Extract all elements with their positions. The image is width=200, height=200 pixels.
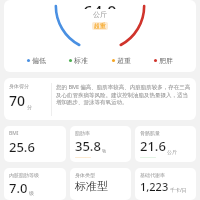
button[interactable]: BMI bbox=[4, 126, 66, 162]
button[interactable]: 超重 bbox=[111, 56, 132, 65]
staticText: 公斤 bbox=[93, 10, 107, 19]
button[interactable]: 64.0 bbox=[4, 0, 196, 72]
button[interactable]: 身体类型 bbox=[70, 168, 131, 200]
staticText: % bbox=[102, 148, 107, 155]
button[interactable]: 肥胖 bbox=[153, 56, 174, 65]
staticText: 标准型 bbox=[75, 179, 108, 193]
staticText: 您的 BMI 偏高、脂肪率较高、内脏脂肪较多，存在三高及心血管疾病等风险。建议控… bbox=[56, 83, 192, 105]
button[interactable]: 脂肪率 bbox=[70, 126, 131, 162]
staticText: 7.0 bbox=[9, 179, 28, 196]
staticText: 64.0 bbox=[83, 0, 117, 9]
button[interactable]: 标准 bbox=[68, 56, 89, 65]
staticText: 70 bbox=[9, 91, 26, 110]
staticText: 公斤 bbox=[167, 149, 177, 155]
staticText: 1,223 bbox=[140, 179, 169, 194]
staticText: 偏低 bbox=[32, 56, 46, 65]
staticText: 25.6 bbox=[9, 138, 35, 156]
staticText: 级 bbox=[29, 190, 34, 196]
staticText: 千卡/日 bbox=[170, 187, 187, 194]
button[interactable]: 偏低 bbox=[26, 56, 47, 65]
staticText: 内脏脂肪等级 bbox=[9, 172, 39, 178]
button[interactable]: 基础代谢率 bbox=[135, 168, 196, 200]
button[interactable]: 内脏脂肪等级 bbox=[4, 168, 66, 200]
staticText: 35.8 bbox=[75, 137, 101, 155]
staticText: 肥胖 bbox=[159, 56, 173, 65]
staticText: 骨骼肌量 bbox=[140, 130, 160, 136]
staticText: 标准 bbox=[74, 56, 88, 65]
staticText: 分 bbox=[27, 104, 32, 110]
staticText: 基础代谢率 bbox=[140, 172, 165, 178]
staticText: 脂肪率 bbox=[75, 130, 90, 136]
staticText: 超重 bbox=[94, 22, 106, 30]
staticText: BMI bbox=[9, 130, 19, 137]
staticText: 身体得分 bbox=[9, 83, 29, 89]
staticText: 21.6 bbox=[140, 137, 166, 155]
staticText: 超重 bbox=[117, 56, 131, 65]
staticText: 身体类型 bbox=[75, 172, 95, 178]
button[interactable]: 骨骼肌量 bbox=[135, 126, 196, 162]
button[interactable]: 身体得分 bbox=[4, 78, 196, 120]
